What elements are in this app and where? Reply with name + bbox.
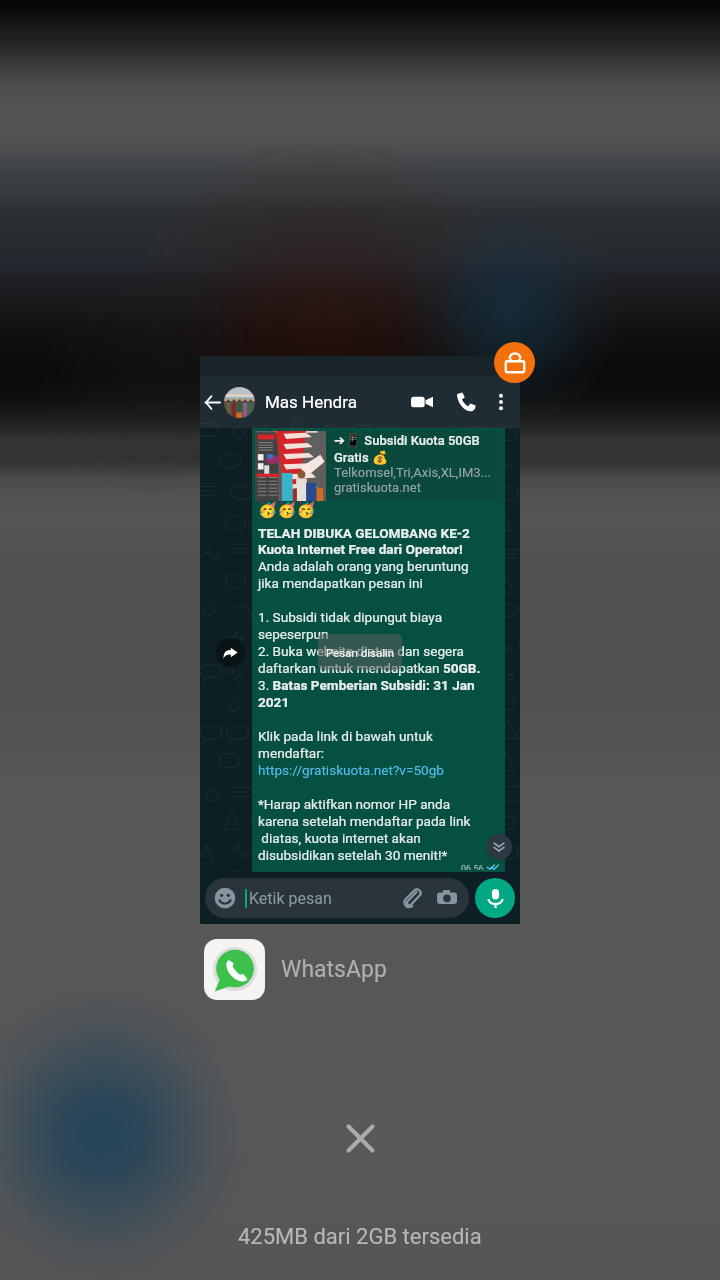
staticText: 🥳🥳🥳 (258, 501, 316, 519)
button[interactable]: Scroll to bottom (486, 834, 512, 860)
button[interactable]: Voice message (475, 878, 515, 918)
staticText: Telkomsel,Tri,Axis,XL,IM3... (334, 465, 491, 480)
staticText: gratiskuota.net (334, 480, 421, 495)
button[interactable]: Lock task (494, 342, 535, 383)
staticText: ➔📱 Subsidi Kuota 50GB Gratis 💰 (334, 433, 499, 465)
staticText: Mas Hendra (265, 392, 357, 412)
button[interactable]: Voice call (449, 385, 483, 419)
button[interactable]: Forward (216, 638, 245, 667)
staticText: TELAH DIBUKA GELOMBANG KE-2 Kuota Intern… (258, 525, 481, 863)
staticText: Ketik pesan (249, 889, 332, 908)
button[interactable]: Video call (405, 385, 439, 419)
button[interactable]: Back (200, 390, 224, 414)
button[interactable]: Attach (400, 886, 424, 910)
button[interactable]: Back (200, 356, 520, 924)
button[interactable]: Close all (336, 1114, 384, 1162)
staticText: Pesan disalin (326, 646, 395, 659)
button[interactable]: Camera (435, 886, 459, 910)
button[interactable]: More options (485, 386, 517, 418)
button[interactable]: Ketik pesan (205, 878, 469, 918)
staticText: 425MB dari 2GB tersedia (238, 1224, 482, 1250)
button[interactable]: WhatsApp (204, 938, 387, 1000)
staticText: 06.56 (461, 864, 484, 870)
staticText: WhatsApp (281, 956, 387, 983)
